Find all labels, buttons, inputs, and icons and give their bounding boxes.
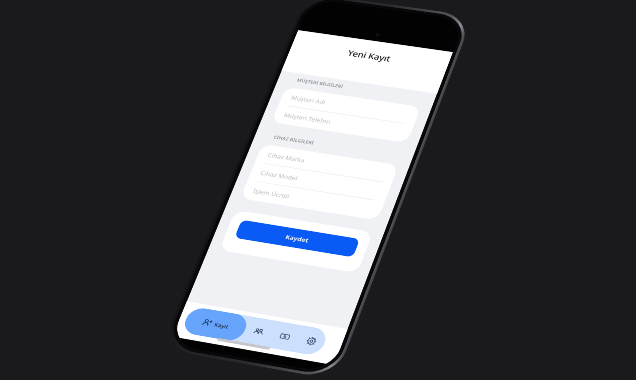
- button[interactable]: İşlem Ücreti: [250, 182, 375, 218]
- button[interactable]: Cihaz Model: [257, 164, 382, 200]
- button[interactable]: Müşteriler: [240, 316, 277, 347]
- staticText: CİHAZ BİLGİLERİ: [273, 134, 315, 145]
- staticText: Kayıt: [213, 321, 230, 330]
- staticText: Cihaz Model: [259, 169, 299, 182]
- button[interactable]: Kaydet: [234, 220, 360, 257]
- button[interactable]: Cihaz Marka: [264, 146, 389, 182]
- staticText: MÜŞTERİ BİLGİLERİ: [296, 77, 344, 89]
- button[interactable]: Kayıt: [180, 306, 251, 343]
- button[interactable]: Ödemeler: [266, 321, 303, 352]
- button[interactable]: Ayarlar: [293, 325, 330, 357]
- button[interactable]: Müşteri Telefon: [281, 106, 404, 141]
- staticText: İşlem Ücreti: [252, 187, 291, 200]
- staticText: Müşteri Adı: [290, 94, 327, 106]
- staticText: Yeni Kayıt: [346, 47, 392, 63]
- button[interactable]: Müşteri Adı: [288, 89, 411, 124]
- staticText: Müşteri Telefon: [283, 111, 332, 125]
- staticText: Kaydet: [284, 233, 310, 244]
- staticText: Cihaz Marka: [266, 151, 306, 164]
